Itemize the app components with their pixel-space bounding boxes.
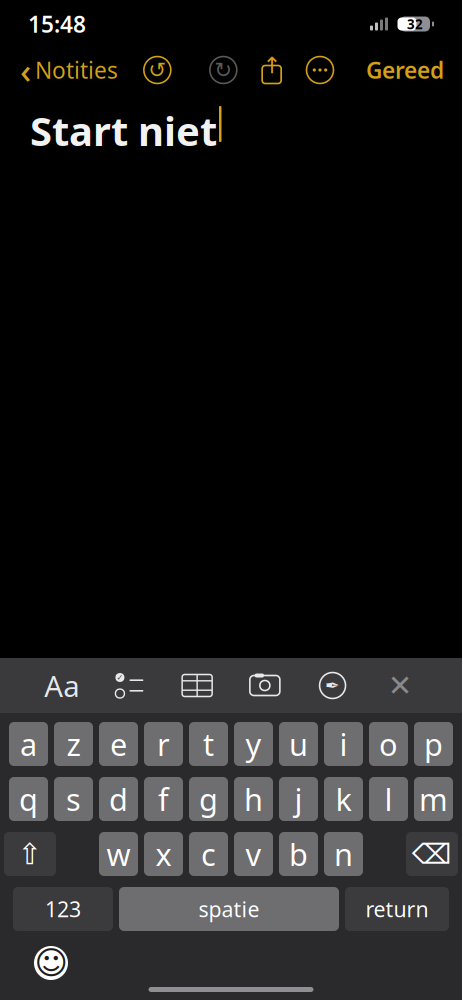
- button[interactable]: Delete: [406, 832, 458, 876]
- button[interactable]: Share: [253, 55, 291, 84]
- staticText: ↑: [262, 53, 281, 78]
- staticText: v: [245, 834, 261, 874]
- button[interactable]: g: [189, 777, 228, 821]
- staticText: f: [158, 779, 169, 819]
- button[interactable]: j: [279, 777, 318, 821]
- button[interactable]: a: [9, 722, 48, 766]
- button[interactable]: spatie: [119, 887, 339, 931]
- button[interactable]: u: [279, 722, 318, 766]
- button[interactable]: Undo: [137, 55, 177, 85]
- staticText: return: [365, 895, 428, 923]
- staticText: spatie: [198, 895, 259, 923]
- staticText: 32: [407, 15, 423, 33]
- button[interactable]: s: [54, 777, 93, 821]
- staticText: m: [419, 779, 448, 819]
- staticText: Notities: [35, 55, 118, 85]
- staticText: l: [384, 779, 392, 819]
- button[interactable]: f: [144, 777, 183, 821]
- button[interactable]: p: [414, 722, 453, 766]
- button[interactable]: h: [234, 777, 273, 821]
- staticText: w: [106, 834, 130, 874]
- staticText: g: [199, 779, 218, 819]
- button[interactable]: More: [300, 55, 340, 85]
- staticText: x: [155, 834, 171, 874]
- button[interactable]: t: [189, 722, 228, 766]
- button[interactable]: i: [324, 722, 363, 766]
- button[interactable]: ‹: [10, 50, 128, 90]
- button[interactable]: l: [369, 777, 408, 821]
- staticText: j: [294, 779, 302, 819]
- staticText: Gereed: [366, 55, 444, 85]
- button[interactable]: b: [279, 832, 318, 876]
- button[interactable]: Shift: [4, 832, 56, 876]
- staticText: s: [66, 779, 81, 819]
- staticText: ✓: [116, 673, 123, 682]
- staticText: ☺: [34, 945, 67, 981]
- button[interactable]: return: [345, 887, 449, 931]
- button[interactable]: d: [99, 777, 138, 821]
- staticText: t: [203, 724, 214, 764]
- staticText: d: [109, 779, 128, 819]
- button[interactable]: Redo: [203, 55, 243, 85]
- staticText: n: [334, 834, 353, 874]
- button[interactable]: x: [144, 832, 183, 876]
- button[interactable]: Markup: [313, 665, 353, 705]
- staticText: h: [244, 779, 263, 819]
- button[interactable]: q: [9, 777, 48, 821]
- button[interactable]: m: [414, 777, 453, 821]
- staticText: Aa: [44, 666, 79, 705]
- staticText: ↺: [148, 58, 166, 82]
- staticText: Start niet: [30, 104, 217, 157]
- staticText: ⌫: [412, 838, 452, 870]
- button[interactable]: v: [234, 832, 273, 876]
- staticText: y: [245, 724, 261, 764]
- staticText: k: [335, 779, 351, 819]
- button[interactable]: 123: [13, 887, 113, 931]
- staticText: ✒: [325, 676, 340, 695]
- staticText: c: [201, 834, 216, 874]
- staticText: ↻: [214, 58, 232, 82]
- button[interactable]: c: [189, 832, 228, 876]
- staticText: 15:48: [28, 9, 86, 39]
- button[interactable]: k: [324, 777, 363, 821]
- staticText: ‹: [20, 47, 31, 93]
- button[interactable]: Close keyboard: [380, 665, 420, 705]
- button[interactable]: Table: [177, 665, 217, 705]
- button[interactable]: Text format: [42, 665, 82, 705]
- button[interactable]: Gereed: [358, 50, 452, 90]
- staticText: ⇧: [17, 837, 42, 871]
- button[interactable]: o: [369, 722, 408, 766]
- button[interactable]: e: [99, 722, 138, 766]
- staticText: u: [289, 724, 308, 764]
- staticText: p: [424, 724, 443, 764]
- staticText: q: [19, 779, 38, 819]
- button[interactable]: z: [54, 722, 93, 766]
- staticText: r: [157, 724, 170, 764]
- staticText: o: [379, 724, 398, 764]
- button[interactable]: Emoji: [28, 940, 74, 986]
- staticText: z: [66, 724, 80, 764]
- button[interactable]: w: [99, 832, 138, 876]
- button[interactable]: y: [234, 722, 273, 766]
- staticText: ✕: [388, 669, 413, 702]
- button[interactable]: r: [144, 722, 183, 766]
- button[interactable]: Checklist: [109, 665, 149, 705]
- button[interactable]: Camera: [245, 665, 285, 705]
- staticText: e: [110, 724, 127, 764]
- staticText: i: [339, 724, 347, 764]
- button[interactable]: n: [324, 832, 363, 876]
- staticText: b: [289, 834, 308, 874]
- staticText: a: [20, 724, 37, 764]
- staticText: 123: [45, 895, 81, 923]
